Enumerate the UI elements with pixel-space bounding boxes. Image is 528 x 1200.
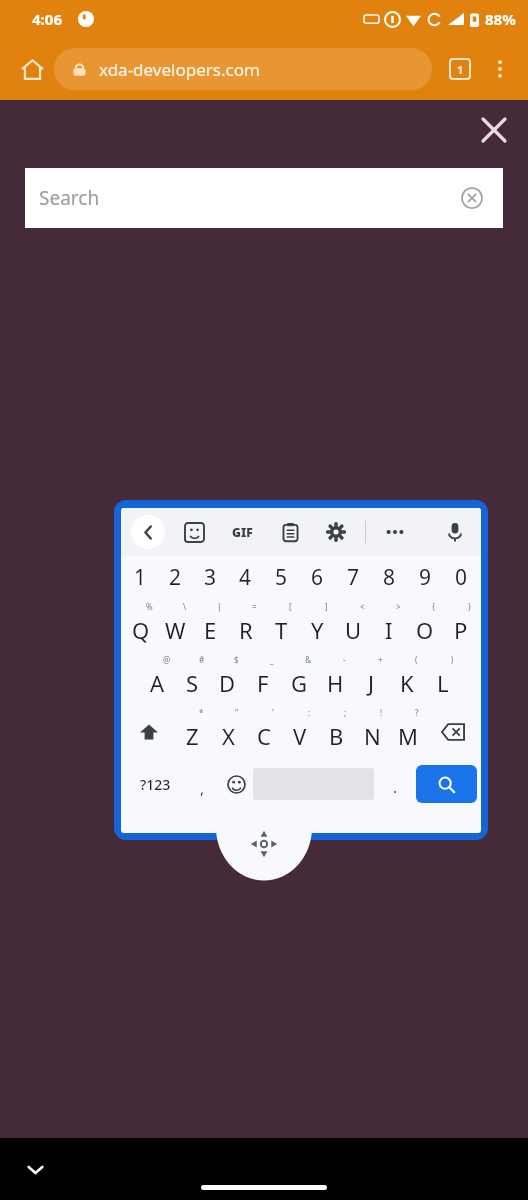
button[interactable]: = xyxy=(228,599,263,652)
button[interactable]: 6 xyxy=(299,556,335,599)
button[interactable]: Clipboard xyxy=(275,517,305,547)
staticText: Q xyxy=(132,615,150,645)
button[interactable]: Voice input xyxy=(439,516,471,548)
staticText: | xyxy=(217,601,222,612)
staticText: < xyxy=(360,601,365,612)
staticText: T xyxy=(275,615,288,645)
staticText: , xyxy=(200,778,205,798)
button[interactable]: @ xyxy=(140,652,175,705)
button[interactable]: Stickers xyxy=(179,517,209,547)
staticText: 5 xyxy=(275,563,288,592)
staticText: L xyxy=(437,668,449,698)
button[interactable]: ( xyxy=(389,652,425,705)
staticText: X xyxy=(222,721,235,751)
staticText: ! xyxy=(380,707,383,718)
button[interactable]: 0 xyxy=(443,556,479,599)
staticText: % xyxy=(146,601,153,612)
staticText: 4:06 xyxy=(32,9,62,29)
button[interactable]: 4 xyxy=(228,556,263,599)
staticText: N xyxy=(364,721,381,751)
button[interactable]: Search xyxy=(416,765,477,803)
button[interactable]: Backspace xyxy=(426,705,479,758)
staticText: : xyxy=(308,707,311,718)
staticText: D xyxy=(219,668,236,698)
button[interactable]: ] xyxy=(299,599,335,652)
staticText: ? xyxy=(415,707,419,718)
button[interactable]: + xyxy=(353,652,389,705)
staticText: Search xyxy=(39,185,455,211)
button[interactable]: 5 xyxy=(263,556,299,599)
staticText: # xyxy=(199,654,205,665)
button[interactable]: Close xyxy=(472,108,516,152)
button[interactable]: & xyxy=(281,652,317,705)
button[interactable]: GIF xyxy=(225,515,259,549)
button[interactable]: Back xyxy=(131,515,165,549)
button[interactable]: Settings xyxy=(321,517,351,547)
button[interactable]: * xyxy=(175,705,210,758)
button[interactable]: More xyxy=(380,517,410,547)
button[interactable]: 7 xyxy=(335,556,371,599)
staticText: } xyxy=(468,601,472,612)
button[interactable]: | xyxy=(193,599,228,652)
button[interactable]: # xyxy=(175,652,210,705)
button[interactable]: . xyxy=(374,758,416,810)
staticText: 2 xyxy=(169,563,182,592)
button[interactable]: 2 xyxy=(158,556,193,599)
button[interactable]: Hide keyboard xyxy=(18,1152,52,1186)
button[interactable]: % xyxy=(123,599,158,652)
button[interactable]: ) xyxy=(425,652,461,705)
button[interactable]: $ xyxy=(210,652,245,705)
button[interactable]: Emoji xyxy=(219,758,253,810)
button[interactable]: ! xyxy=(354,705,390,758)
staticText: ' xyxy=(272,707,274,718)
button[interactable]: } xyxy=(443,599,479,652)
button[interactable]: - xyxy=(317,652,353,705)
staticText: > xyxy=(396,601,401,612)
button[interactable]: { xyxy=(407,599,443,652)
staticText: C xyxy=(257,721,271,751)
staticText: V xyxy=(293,721,307,751)
staticText: xda-developers.com xyxy=(99,58,260,81)
staticText: - xyxy=(343,654,346,665)
staticText: 1 xyxy=(457,62,464,77)
button[interactable]: More options xyxy=(480,49,520,89)
staticText: = xyxy=(252,601,257,612)
staticText: 3 xyxy=(204,563,217,592)
button[interactable]: ?123 xyxy=(125,758,185,810)
button[interactable]: 1 xyxy=(123,556,158,599)
button[interactable]: Search xyxy=(25,168,503,228)
button[interactable]: xda-developers.com xyxy=(54,48,432,90)
staticText: . xyxy=(393,777,398,797)
button[interactable]: : xyxy=(282,705,318,758)
staticText: ( xyxy=(415,654,418,665)
button[interactable]: > xyxy=(371,599,407,652)
staticText: Z xyxy=(186,721,199,751)
staticText: _ xyxy=(270,654,274,665)
staticText: 0 xyxy=(455,563,468,592)
button[interactable]: \ xyxy=(158,599,193,652)
button[interactable]: Shift xyxy=(123,705,175,758)
staticText: ; xyxy=(344,707,347,718)
button[interactable]: 3 xyxy=(193,556,228,599)
button[interactable]: _ xyxy=(245,652,281,705)
button[interactable]: < xyxy=(335,599,371,652)
button[interactable]: ? xyxy=(390,705,426,758)
button[interactable]: Clear xyxy=(455,181,489,215)
staticText: A xyxy=(150,668,165,698)
staticText: 8 xyxy=(383,563,396,592)
button[interactable]: [ xyxy=(263,599,299,652)
button[interactable]: 8 xyxy=(371,556,407,599)
button[interactable]: 9 xyxy=(407,556,443,599)
staticText: 9 xyxy=(419,563,432,592)
button[interactable]: " xyxy=(210,705,246,758)
staticText: 7 xyxy=(347,563,360,592)
button[interactable]: , xyxy=(185,758,219,810)
button[interactable]: Move keyboard xyxy=(250,830,278,858)
button[interactable]: Home xyxy=(14,51,50,87)
staticText: G xyxy=(291,668,308,698)
button[interactable]: ' xyxy=(246,705,282,758)
button[interactable]: Tabs xyxy=(440,49,480,89)
button[interactable]: ; xyxy=(318,705,354,758)
staticText: \ xyxy=(183,601,186,612)
